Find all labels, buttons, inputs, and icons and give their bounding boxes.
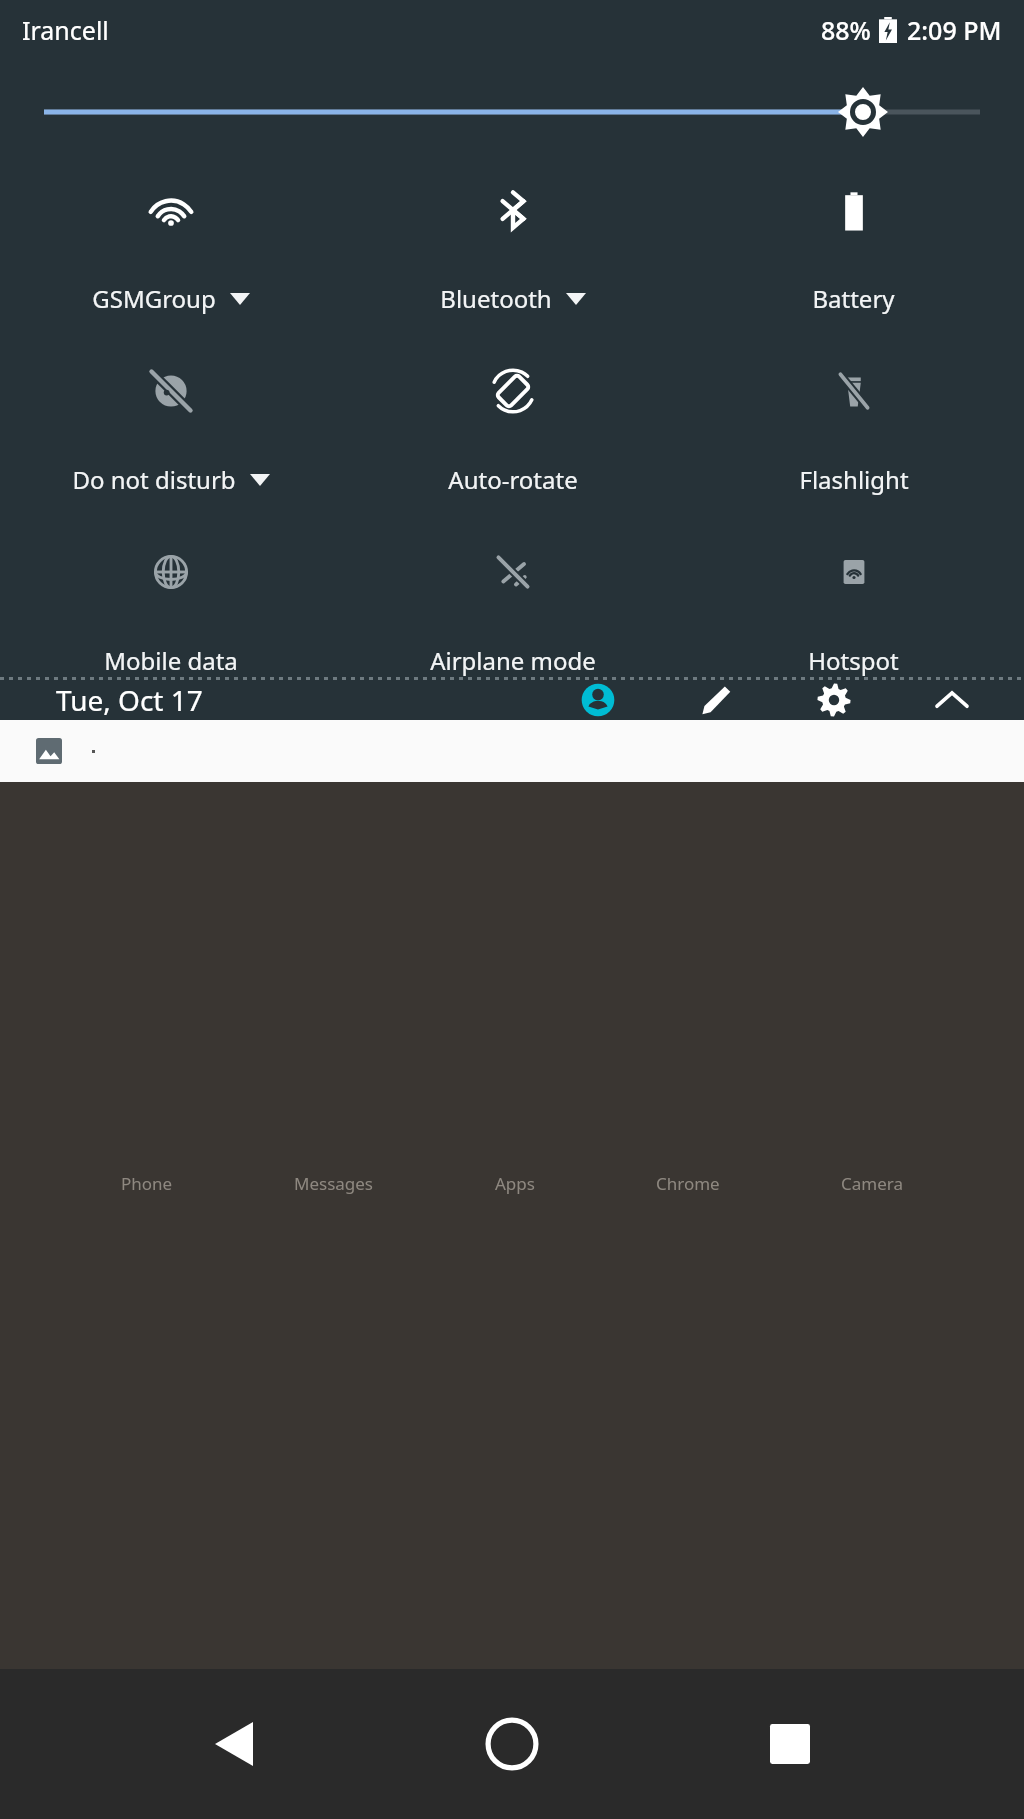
staticText: GSMGroup xyxy=(92,282,216,315)
staticText: 88% xyxy=(821,13,871,47)
staticText: Hotspot xyxy=(808,644,899,677)
staticText: Battery xyxy=(812,282,895,315)
staticText: Auto-rotate xyxy=(448,463,578,496)
button[interactable]: Back xyxy=(190,1700,278,1788)
staticText: Mobile data xyxy=(104,644,238,677)
staticText: Do not disturb xyxy=(72,463,236,496)
button[interactable]: Recents xyxy=(746,1700,834,1788)
button[interactable]: Battery xyxy=(683,184,1024,315)
staticText: Flashlight xyxy=(799,463,909,496)
button[interactable]: Bluetooth xyxy=(342,184,683,315)
button[interactable]: Settings xyxy=(806,680,862,720)
button[interactable]: Auto-rotate xyxy=(342,365,683,496)
staticText: Tue, Oct 17 xyxy=(56,681,203,719)
button[interactable]: Home xyxy=(468,1700,556,1788)
staticText: Bluetooth xyxy=(440,282,552,315)
button[interactable]: Hotspot xyxy=(683,546,1024,677)
staticText: Messages xyxy=(294,1172,374,1195)
button[interactable]: Flashlight xyxy=(683,365,1024,496)
staticText: 2:09 PM xyxy=(907,13,1002,47)
button[interactable]: Collapse xyxy=(924,680,980,720)
staticText: Camera xyxy=(841,1172,903,1195)
staticText: Chrome xyxy=(656,1172,720,1195)
staticText: Airplane mode xyxy=(430,644,596,677)
button[interactable]: Mobile data xyxy=(0,546,342,677)
staticText: Phone xyxy=(121,1172,173,1195)
button[interactable]: GSMGroup xyxy=(0,184,342,315)
button[interactable]: User xyxy=(570,680,626,720)
button[interactable] xyxy=(0,720,1024,782)
button[interactable]: Edit xyxy=(688,680,744,720)
staticText: Apps xyxy=(495,1172,535,1195)
button[interactable]: Airplane mode xyxy=(342,546,683,677)
button[interactable]: Brightness xyxy=(0,84,1024,140)
staticText: Irancell xyxy=(22,13,109,47)
button[interactable]: Do not disturb xyxy=(0,365,342,496)
